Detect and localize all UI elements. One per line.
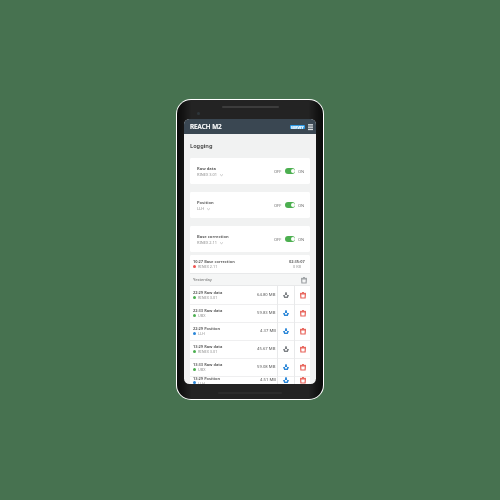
button[interactable]: Delete	[295, 358, 310, 376]
button[interactable]: Delete	[295, 322, 310, 340]
staticText: 59.83 MB	[257, 310, 276, 316]
button[interactable]: Raw data	[190, 158, 310, 184]
button[interactable]: Toggle Position	[285, 202, 295, 208]
staticText: 59.08 MB	[257, 364, 276, 370]
button[interactable]: Download	[278, 304, 294, 322]
button[interactable]: Toggle Base correction	[285, 236, 295, 242]
staticText: RINEX 2.11	[197, 240, 218, 245]
button[interactable]: Delete all	[299, 275, 308, 284]
button[interactable]: Download	[278, 286, 294, 304]
staticText: OFF	[274, 169, 282, 174]
staticText: Base correction	[197, 234, 229, 240]
staticText: OFF	[274, 203, 282, 208]
button[interactable]: Download	[278, 340, 294, 358]
button[interactable]: Delete	[295, 376, 310, 384]
button[interactable]: Download	[278, 358, 294, 376]
staticText: LLH	[198, 331, 205, 336]
button[interactable]: 22:29 Raw data	[190, 286, 277, 304]
button[interactable]: Position	[190, 192, 310, 218]
staticText: 10:27 Base correction	[193, 259, 235, 264]
staticText: Logging	[190, 142, 213, 150]
staticText: RINEX 3.01	[197, 172, 218, 177]
button[interactable]: Download	[278, 322, 294, 340]
staticText: REACH M2	[190, 122, 222, 131]
button[interactable]: Delete	[295, 340, 310, 358]
staticText: UBX	[198, 367, 206, 372]
staticText: 13:33 Raw data	[193, 362, 223, 367]
staticText: 13:29 Raw data	[193, 344, 223, 349]
staticText: RINEX 3.01	[198, 349, 218, 354]
staticText: 45.67 MB	[257, 346, 276, 352]
button[interactable]: Toggle Raw data	[285, 168, 295, 174]
button[interactable]: 10:27 Base correction	[190, 255, 310, 273]
button[interactable]: 13:29 Raw data	[190, 340, 277, 358]
staticText: Raw data	[197, 166, 216, 172]
staticText: UBX	[198, 313, 206, 318]
staticText: RINEX 3.01	[198, 295, 218, 300]
staticText: LLH	[197, 206, 205, 211]
staticText: OFF	[274, 237, 282, 242]
staticText: LLH	[198, 381, 205, 384]
button[interactable]: SURVEY	[290, 125, 305, 129]
staticText: 02:35:07	[289, 259, 305, 264]
staticText: ON	[298, 169, 305, 174]
staticText: 64.80 MB	[257, 292, 276, 298]
staticText: 4.37 MB	[260, 328, 276, 334]
staticText: 22:33 Raw data	[193, 308, 223, 313]
button[interactable]: Delete	[295, 286, 310, 304]
staticText: SURVEY	[291, 125, 304, 129]
button[interactable]: 22:33 Raw data	[190, 304, 277, 322]
button[interactable]: Menu	[306, 119, 315, 134]
button[interactable]: Base correction	[190, 226, 310, 252]
button[interactable]: 22:29 Position	[190, 322, 277, 340]
staticText: RINEX 2.11	[198, 264, 218, 269]
button[interactable]: 13:33 Raw data	[190, 358, 277, 376]
button[interactable]: Delete	[295, 304, 310, 322]
button[interactable]: 13:29 Position	[190, 376, 277, 384]
staticText: 22:29 Position	[193, 326, 221, 331]
staticText: 0 KB	[293, 264, 301, 269]
staticText: ON	[298, 203, 305, 208]
staticText: 4.51 MB	[260, 377, 276, 383]
staticText: 13:29 Position	[193, 376, 221, 381]
button[interactable]: Download	[278, 376, 294, 384]
staticText: Position	[197, 200, 214, 206]
staticText: 22:29 Raw data	[193, 290, 223, 295]
staticText: Yesterday	[193, 277, 212, 283]
staticText: ON	[298, 237, 305, 242]
